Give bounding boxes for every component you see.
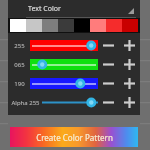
- button[interactable]: Increase: [118, 36, 140, 55]
- button[interactable]: Increase: [118, 55, 140, 74]
- staticText: Create Color Pattern: [36, 132, 113, 143]
- button[interactable]: Decrease: [98, 36, 118, 55]
- button[interactable]: Decrease: [98, 55, 118, 74]
- button[interactable]: Decrease: [98, 93, 118, 112]
- button[interactable]: [30, 55, 98, 74]
- button[interactable]: Increase: [118, 93, 140, 112]
- staticText: 190: [14, 80, 25, 88]
- button[interactable]: Create Color Pattern: [10, 127, 138, 147]
- button[interactable]: [42, 93, 98, 112]
- staticText: Alpha 255: [11, 99, 40, 107]
- staticText: Text Color: [28, 4, 61, 14]
- staticText: 255: [14, 42, 25, 50]
- button[interactable]: Text Color: [8, 0, 140, 18]
- button[interactable]: Decrease: [98, 74, 118, 93]
- button[interactable]: [30, 36, 98, 55]
- button[interactable]: Increase: [118, 74, 140, 93]
- staticText: 065: [14, 61, 25, 69]
- button[interactable]: [30, 74, 98, 93]
